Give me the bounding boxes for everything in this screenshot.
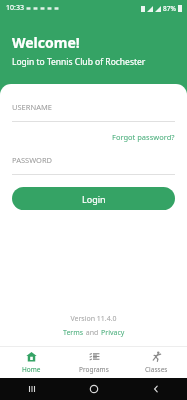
button[interactable]: USERNAME [12, 102, 175, 122]
button[interactable]: Terms [63, 328, 84, 338]
staticText: USERNAME [12, 102, 52, 112]
button[interactable]: Classes [125, 347, 187, 378]
staticText: Classes [145, 365, 168, 374]
staticText: Home [22, 365, 41, 374]
button[interactable]: Login [12, 187, 175, 210]
staticText: PASSWORD [12, 155, 53, 165]
staticText: 10:33 [6, 3, 24, 13]
button[interactable]: Privacy [101, 328, 125, 338]
staticText: Welcome! [12, 33, 80, 52]
staticText: 87% [163, 4, 176, 13]
staticText: Login to Tennis Club of Rochester [12, 56, 146, 68]
button[interactable]: PASSWORD [12, 155, 175, 175]
staticText: and [84, 328, 101, 338]
button[interactable]: Forgot password? [112, 132, 175, 142]
staticText: Login [82, 193, 106, 205]
staticText: Version 11.4.0 [0, 314, 187, 324]
button[interactable]: Programs [63, 347, 125, 378]
staticText: Programs [79, 365, 109, 374]
button[interactable]: Home [0, 347, 63, 378]
